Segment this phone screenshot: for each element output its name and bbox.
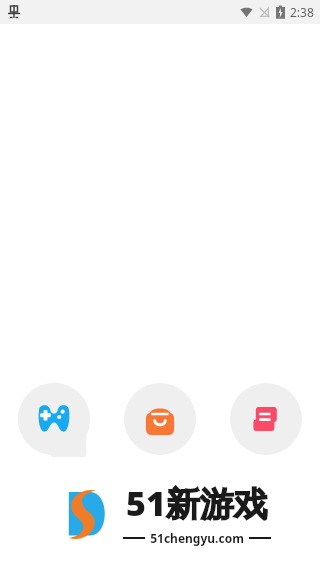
staticText: 2:38: [290, 4, 314, 20]
button[interactable]: Games: [18, 383, 90, 455]
staticText: 51新游戏: [126, 480, 268, 526]
button[interactable]: Store: [124, 383, 196, 455]
button[interactable]: News: [230, 383, 302, 455]
staticText: 51chengyu.com: [150, 530, 244, 546]
